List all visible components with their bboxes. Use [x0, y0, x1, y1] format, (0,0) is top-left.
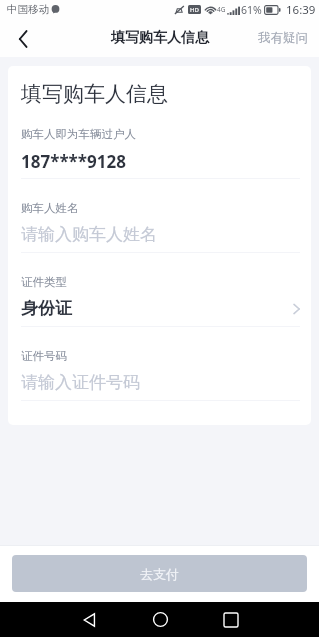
- staticText: HD: [190, 6, 199, 14]
- staticText: 购车人即为车辆过户人: [21, 127, 136, 141]
- staticText: 填写购车人信息: [21, 81, 168, 107]
- staticText: 请输入购车人姓名: [21, 224, 157, 245]
- staticText: 请输入证件号码: [21, 372, 140, 393]
- staticText: 证件类型: [21, 275, 67, 289]
- staticText: 填写购车人信息: [111, 29, 209, 47]
- button[interactable]: Recent apps: [209, 602, 253, 637]
- button[interactable]: 证件类型: [8, 253, 311, 327]
- button[interactable]: Back: [67, 602, 111, 637]
- button[interactable]: 我有疑问: [258, 30, 308, 46]
- staticText: 我有疑问: [258, 30, 308, 46]
- button[interactable]: Home: [138, 602, 182, 637]
- staticText: 购车人姓名: [21, 201, 79, 215]
- staticText: 中国移动: [7, 3, 49, 16]
- staticText: 16:39: [286, 2, 316, 18]
- staticText: 去支付: [140, 566, 179, 582]
- button[interactable]: 购车人姓名: [8, 179, 311, 253]
- staticText: 187****9128: [21, 150, 126, 173]
- button[interactable]: Back: [0, 20, 46, 57]
- button[interactable]: 证件号码: [8, 327, 311, 401]
- button[interactable]: 去支付: [12, 555, 307, 592]
- staticText: 61%: [241, 3, 262, 17]
- staticText: 身份证: [21, 298, 72, 319]
- staticText: 证件号码: [21, 349, 67, 363]
- button[interactable]: 购车人即为车辆过户人: [8, 105, 311, 179]
- staticText: 4G: [217, 5, 226, 14]
